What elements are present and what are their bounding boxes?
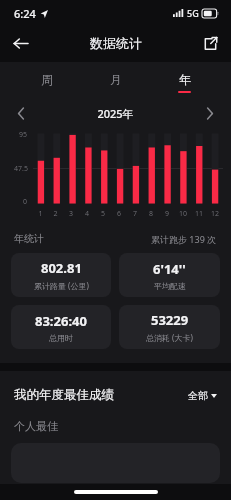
staticText: 5 xyxy=(95,209,111,219)
staticText: 8 xyxy=(143,209,159,219)
staticText: 95 xyxy=(19,130,28,140)
staticText: 7 xyxy=(127,209,143,219)
staticText: 年 xyxy=(179,72,191,87)
button[interactable]: 年 xyxy=(150,62,219,102)
staticText: 6'14'' xyxy=(153,260,186,278)
button[interactable]: Next year xyxy=(201,104,219,122)
staticText: 6 xyxy=(111,209,127,219)
staticText: 1 xyxy=(33,209,48,219)
staticText: 累计路量 (公里) xyxy=(34,280,89,291)
staticText: 平均配速 xyxy=(154,281,186,291)
staticText: 83:26:40 xyxy=(35,312,87,330)
staticText: 累计跑步 139 次 xyxy=(151,233,217,245)
button[interactable]: 全部 xyxy=(188,389,217,402)
button[interactable]: Share xyxy=(197,30,223,56)
button[interactable]: 月 xyxy=(81,62,150,102)
staticText: 总用时 xyxy=(49,333,73,343)
button[interactable]: 83:26:40 xyxy=(11,305,111,349)
staticText: 个人最佳 xyxy=(14,419,58,433)
staticText: 我的年度最佳成绩 xyxy=(14,387,114,403)
staticText: 周 xyxy=(41,72,53,87)
staticText: 3 xyxy=(63,209,79,219)
staticText: 月 xyxy=(110,72,122,87)
staticText: 2 xyxy=(48,209,63,219)
staticText: 10 xyxy=(175,209,191,219)
staticText: 数据统计 xyxy=(90,35,142,51)
button[interactable]: Previous year xyxy=(12,104,30,122)
staticText: 47.5 xyxy=(14,164,28,174)
staticText: 11 xyxy=(191,209,207,219)
staticText: 全部 xyxy=(188,389,208,402)
button[interactable]: 6'14'' xyxy=(119,253,220,297)
staticText: 12 xyxy=(207,209,223,219)
staticText: 5G xyxy=(187,7,199,19)
staticText: 53229 xyxy=(151,311,189,329)
button[interactable]: 53229 xyxy=(119,305,220,349)
staticText: 4 xyxy=(79,209,95,219)
staticText: 0 xyxy=(23,197,28,207)
staticText: 6:24 xyxy=(14,6,36,21)
staticText: 9 xyxy=(159,209,175,219)
button[interactable]: 周 xyxy=(12,62,81,102)
button[interactable]: Back xyxy=(6,29,34,57)
staticText: 802.81 xyxy=(41,259,82,277)
button[interactable]: 802.81 xyxy=(11,253,111,297)
staticText: 年统计 xyxy=(14,232,44,245)
staticText: 总消耗 (大卡) xyxy=(146,332,193,343)
staticText: 2025年 xyxy=(30,106,201,121)
